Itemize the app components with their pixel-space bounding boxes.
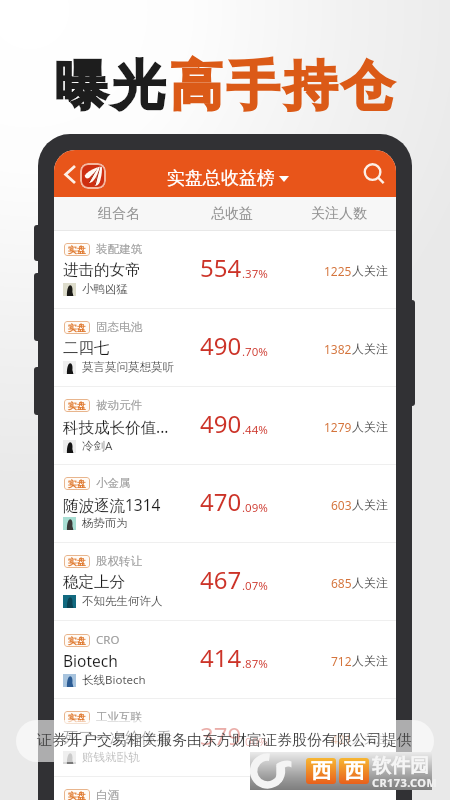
- staticText: 软件园: [372, 754, 429, 778]
- staticText: 712: [331, 653, 352, 669]
- staticText: 470: [200, 485, 242, 518]
- staticText: 稳定上分: [63, 572, 188, 592]
- staticText: 组合名: [98, 205, 140, 223]
- staticText: 被动元件: [96, 398, 142, 412]
- staticText: 固态电池: [96, 320, 142, 334]
- staticText: 603: [331, 497, 352, 513]
- staticText: 莫言莫问莫想莫听: [82, 360, 174, 374]
- staticText: 证券开户交易相关服务由东方财富证券股份有限公司提供: [37, 731, 412, 750]
- button[interactable]: 实盘: [54, 621, 396, 699]
- staticText: 人关注: [352, 263, 388, 278]
- staticText: CR173.COM: [372, 775, 438, 790]
- staticText: 实盘: [68, 712, 86, 723]
- staticText: 685: [331, 575, 352, 591]
- staticText: 西: [344, 758, 365, 784]
- staticText: 死了一次给你看: [63, 728, 188, 748]
- staticText: 人关注: [352, 419, 388, 434]
- staticText: 实盘: [68, 244, 86, 255]
- staticText: 实盘: [68, 790, 86, 800]
- staticText: 科技成长价值...: [63, 416, 188, 437]
- staticText: .00%: [242, 734, 268, 750]
- staticText: .09%: [242, 500, 268, 516]
- staticText: 冷剑A: [82, 438, 113, 454]
- staticText: 554: [200, 251, 242, 284]
- button[interactable]: Back: [54, 159, 84, 189]
- button[interactable]: 实盘: [54, 777, 396, 800]
- staticText: 二四七: [63, 338, 188, 358]
- staticText: 实盘: [68, 478, 86, 489]
- staticText: 西: [311, 758, 332, 784]
- staticText: 1225: [324, 263, 352, 279]
- staticText: 装配建筑: [96, 242, 142, 256]
- button[interactable]: 实盘: [54, 543, 396, 621]
- staticText: 白酒: [96, 788, 119, 800]
- button[interactable]: 实盘: [54, 387, 396, 465]
- staticText: 实盘: [68, 322, 86, 333]
- staticText: 实盘: [68, 556, 86, 567]
- button[interactable]: 实盘: [54, 231, 396, 309]
- staticText: 人关注: [352, 341, 388, 356]
- staticText: 小鸭凶猛: [82, 282, 128, 296]
- staticText: .44%: [242, 422, 268, 438]
- staticText: 467: [200, 563, 242, 596]
- staticText: .87%: [242, 656, 268, 672]
- staticText: 工业互联: [96, 710, 142, 724]
- button[interactable]: 实盘: [54, 465, 396, 543]
- staticText: 实盘: [68, 635, 86, 646]
- staticText: 421: [331, 731, 352, 747]
- button[interactable]: Search: [359, 159, 389, 189]
- staticText: 曝光高手持仓: [55, 53, 399, 120]
- staticText: 股权转让: [96, 554, 142, 568]
- staticText: 实盘: [68, 400, 86, 411]
- staticText: 1382: [324, 341, 352, 357]
- staticText: 414: [200, 641, 242, 674]
- staticText: 1279: [324, 419, 352, 435]
- staticText: CRO: [96, 632, 120, 648]
- staticText: .07%: [242, 578, 268, 594]
- staticText: Biotech: [63, 650, 188, 671]
- button[interactable]: 实盘总收益榜: [167, 167, 289, 190]
- staticText: 人关注: [352, 575, 388, 590]
- staticText: 490: [200, 329, 242, 362]
- staticText: 长线Biotech: [82, 672, 146, 688]
- staticText: 杨势而为: [82, 516, 128, 530]
- staticText: 490: [200, 407, 242, 440]
- button[interactable]: 实盘: [54, 309, 396, 387]
- staticText: 进击的女帝: [63, 260, 188, 280]
- staticText: .37%: [242, 266, 268, 282]
- staticText: 不知先生何许人: [82, 594, 163, 608]
- button[interactable]: App logo: [80, 163, 106, 189]
- staticText: 人关注: [352, 497, 388, 512]
- staticText: 小金属: [96, 476, 131, 490]
- staticText: 随波逐流1314: [63, 494, 188, 515]
- staticText: 实盘总收益榜: [167, 167, 275, 190]
- staticText: 关注人数: [311, 205, 367, 223]
- staticText: 379: [200, 719, 242, 752]
- button[interactable]: 实盘: [54, 699, 396, 777]
- staticText: .70%: [242, 344, 268, 360]
- staticText: 总收益: [211, 205, 253, 223]
- staticText: 人关注: [352, 653, 388, 668]
- staticText: 人关注: [352, 731, 388, 746]
- staticText: 赔钱就卧轨: [82, 750, 140, 764]
